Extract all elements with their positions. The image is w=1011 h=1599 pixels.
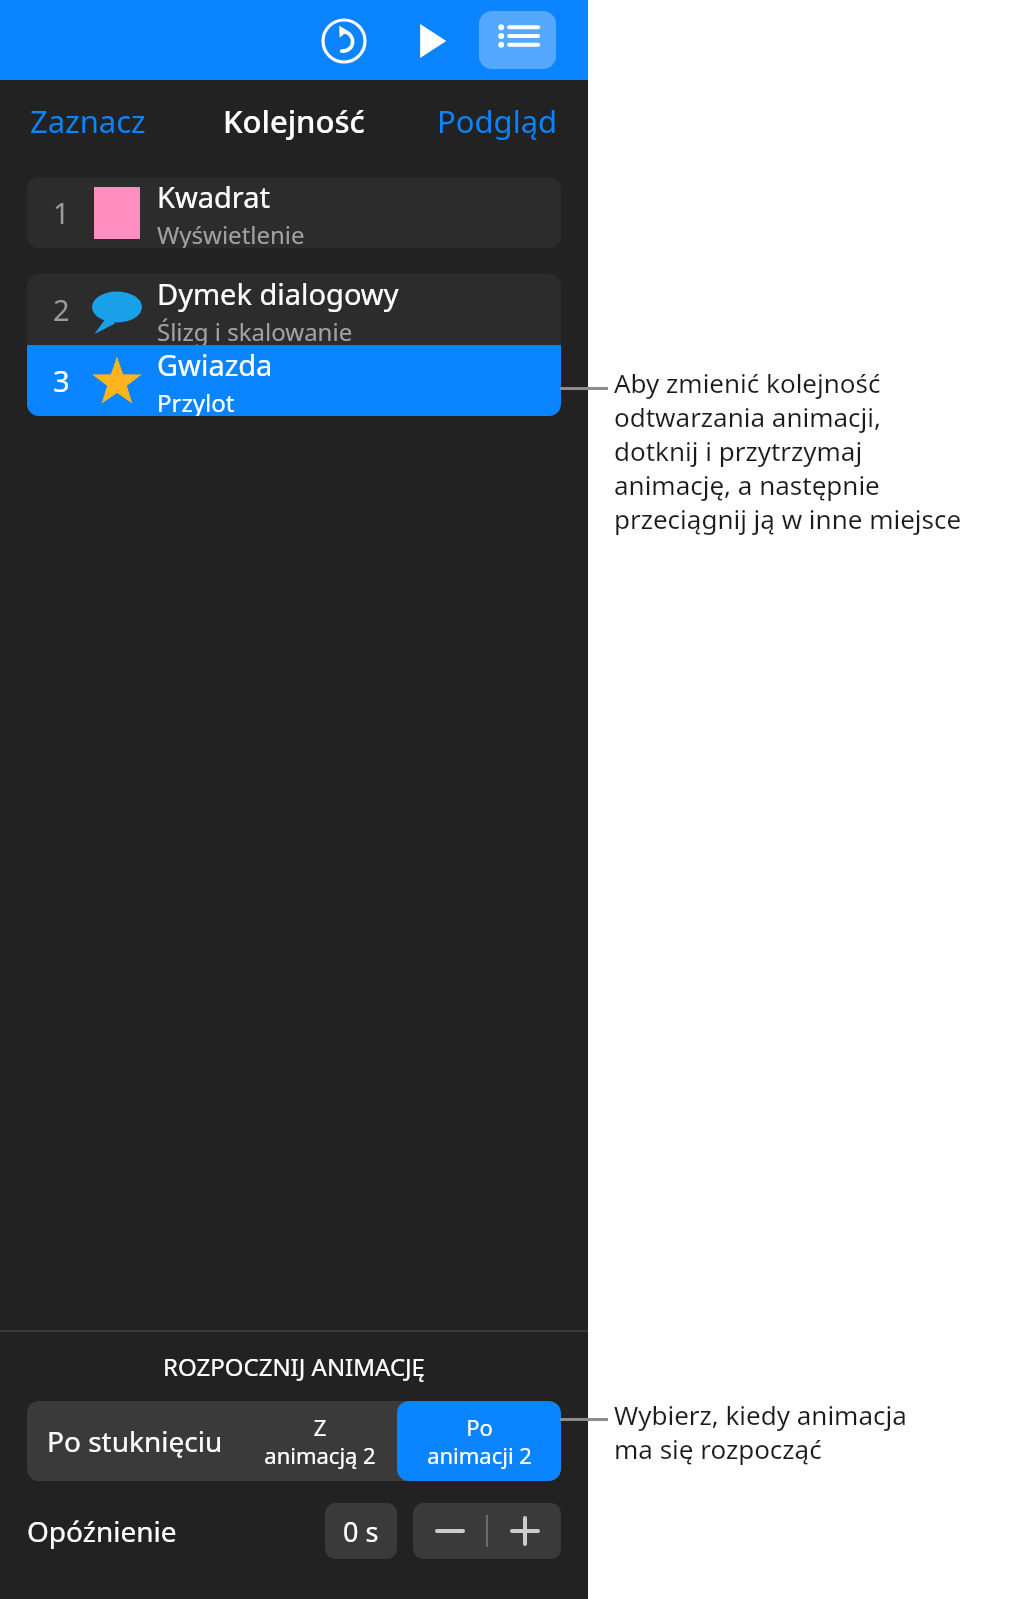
- button[interactable]: Cofnij: [313, 10, 375, 72]
- staticText: Kwadrat: [157, 177, 270, 216]
- staticText: 2: [53, 290, 91, 329]
- staticText: Gwiazda: [157, 345, 273, 384]
- staticText: Z animacją 2: [264, 1412, 376, 1470]
- staticText: Kolejność: [223, 100, 365, 142]
- staticText: Podgląd: [437, 100, 558, 142]
- button[interactable]: Z animacją 2: [243, 1401, 397, 1481]
- button[interactable]: Zaznacz: [14, 90, 162, 152]
- staticText: Wybierz, kiedy animacja ma się rozpocząć: [614, 1397, 907, 1466]
- staticText: Dymek dialogowy: [157, 274, 399, 313]
- staticText: Po animacji 2: [427, 1412, 532, 1470]
- staticText: Przylot: [157, 386, 235, 416]
- button[interactable]: Kolejność animacji: [479, 11, 556, 69]
- staticText: Aby zmienić kolejność odtwarzania animac…: [614, 365, 962, 536]
- button[interactable]: 3: [27, 345, 561, 416]
- button[interactable]: 2: [27, 274, 561, 345]
- staticText: Zaznacz: [30, 100, 146, 142]
- button[interactable]: 0 s: [325, 1503, 397, 1559]
- staticText: Po stuknięciu: [47, 1422, 223, 1460]
- staticText: ROZPOCZNIJ ANIMACJĘ: [0, 1350, 588, 1383]
- staticText: 1: [53, 193, 91, 232]
- staticText: 0 s: [343, 1513, 379, 1550]
- button[interactable]: Po stuknięciu: [27, 1401, 243, 1481]
- button[interactable]: Zwiększ: [488, 1503, 561, 1559]
- staticText: 3: [53, 361, 91, 400]
- staticText: Opóźnienie: [27, 1512, 177, 1550]
- staticText: Ślizg i skalowanie: [157, 315, 353, 345]
- button[interactable]: Podgląd: [421, 90, 574, 152]
- button[interactable]: Po animacji 2: [397, 1401, 561, 1481]
- button[interactable]: Zmniejsz: [413, 1503, 486, 1559]
- button[interactable]: Odtwórz: [400, 10, 462, 72]
- staticText: Wyświetlenie: [157, 218, 305, 248]
- button[interactable]: 1: [27, 177, 561, 248]
